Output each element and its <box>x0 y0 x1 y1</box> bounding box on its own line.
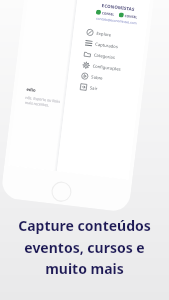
staticText: Sair <box>90 85 98 92</box>
button[interactable]: Sobre <box>68 69 141 88</box>
staticText: Capture conteúdos eventos, cursos e muit… <box>18 216 151 278</box>
staticText: Explore <box>96 31 112 38</box>
button[interactable]: Configurações <box>69 58 142 77</box>
staticText: contato@economistas.com <box>96 17 137 25</box>
staticText: edio <box>26 86 37 93</box>
button[interactable]: Categorias <box>70 47 143 66</box>
staticText: CONSEL <box>124 14 138 19</box>
staticText: Sobre <box>91 74 103 82</box>
staticText: nôs. Esporte ou links mais recentes. <box>24 95 60 109</box>
button[interactable]: Sair <box>66 80 139 99</box>
button[interactable]: Capturados <box>72 36 144 55</box>
staticText: CONSEL <box>102 11 115 17</box>
staticText: ECONOMISTAS <box>101 2 135 12</box>
staticText: Categorias <box>93 53 116 61</box>
staticText: Capturados <box>95 42 118 50</box>
button[interactable]: Explore <box>73 25 146 44</box>
staticText: Configurações <box>92 63 122 73</box>
